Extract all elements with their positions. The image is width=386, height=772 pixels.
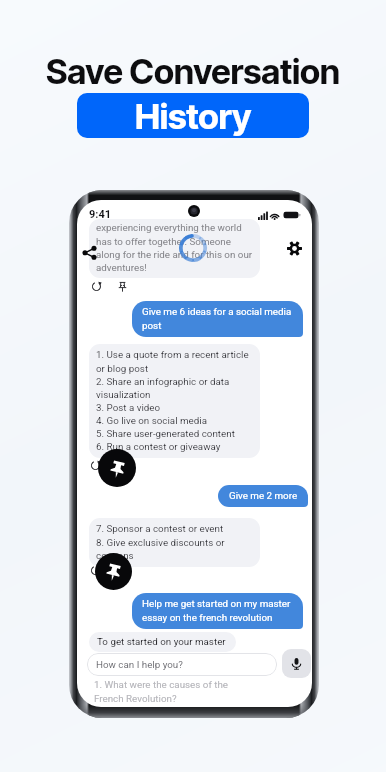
staticText: 7. Sponsor a contest or event 8. Give ex…: [96, 523, 253, 561]
staticText: Help me get started on my master essay o…: [142, 598, 295, 623]
button[interactable]: Pin: [98, 449, 136, 487]
staticText: Save Conversation: [46, 51, 340, 93]
button[interactable]: Give me 6 ideas for a social media post: [132, 301, 303, 337]
staticText: 1. Use a quote from a recent article or …: [96, 349, 253, 452]
button[interactable]: Settings: [285, 239, 304, 258]
staticText: Give me 6 ideas for a social media post: [142, 306, 295, 331]
button[interactable]: Voice input: [282, 649, 311, 678]
button[interactable]: Help me get started on my master essay o…: [132, 593, 303, 629]
staticText: How can I help you?: [96, 659, 183, 670]
staticText: 1. What were the causes of the French Re…: [94, 679, 229, 704]
staticText: History: [135, 95, 252, 137]
button[interactable]: Pin message: [116, 280, 129, 293]
staticText: 9:41: [89, 208, 112, 221]
button[interactable]: Pin: [95, 553, 132, 590]
button[interactable]: History: [77, 93, 309, 138]
button[interactable]: How can I help you?: [87, 653, 277, 676]
staticText: To get started on your master: [97, 636, 226, 647]
button[interactable]: Regenerate: [90, 280, 103, 293]
staticText: experiencing everything the world has to…: [96, 222, 253, 273]
button[interactable]: Give me 2 more: [218, 485, 308, 507]
staticText: Give me 2 more: [229, 490, 298, 501]
